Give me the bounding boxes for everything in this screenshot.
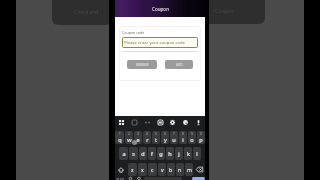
staticText: 6 bbox=[164, 132, 166, 136]
button[interactable]: a bbox=[119, 147, 128, 160]
button[interactable]: 1 bbox=[115, 131, 124, 144]
button[interactable]: z bbox=[128, 163, 137, 176]
button[interactable]: Previous screenshot bbox=[16, 0, 109, 180]
staticText: 3 bbox=[137, 132, 139, 136]
staticText: Please enter your coupon code bbox=[124, 40, 185, 46]
button[interactable]: k bbox=[184, 147, 192, 160]
staticText: m bbox=[187, 166, 192, 173]
staticText: g bbox=[159, 150, 163, 157]
button[interactable]: 8 bbox=[179, 131, 187, 144]
button[interactable]: d bbox=[139, 147, 147, 160]
staticText: v bbox=[161, 166, 164, 173]
button[interactable]: Symbols bbox=[115, 177, 125, 180]
staticText: i bbox=[182, 136, 184, 143]
button[interactable]: 5 bbox=[152, 131, 160, 144]
staticText: f bbox=[151, 150, 153, 157]
button[interactable]: b bbox=[167, 163, 175, 176]
staticText: p bbox=[199, 136, 203, 143]
staticText: Coupon code bbox=[122, 30, 145, 35]
button[interactable]: 3 bbox=[134, 131, 142, 144]
staticText: o bbox=[190, 136, 194, 143]
button[interactable]: Settings bbox=[167, 117, 178, 128]
button[interactable]: Backspace bbox=[194, 163, 205, 176]
button[interactable]: Voice input bbox=[193, 117, 204, 128]
staticText: 0 bbox=[200, 132, 202, 136]
button[interactable]: Next screenshot bbox=[209, 0, 304, 180]
staticText: Check and bbox=[74, 9, 99, 16]
staticText: z bbox=[131, 166, 134, 173]
staticText: 2 bbox=[128, 132, 130, 136]
staticText: w bbox=[127, 136, 132, 143]
button[interactable]: j bbox=[175, 147, 183, 160]
staticText: q bbox=[118, 136, 122, 143]
button[interactable]: n bbox=[176, 163, 184, 176]
staticText: b bbox=[169, 166, 173, 173]
button[interactable]: l bbox=[193, 147, 201, 160]
staticText: k bbox=[187, 150, 190, 157]
button[interactable]: s bbox=[129, 147, 138, 160]
button[interactable]: 0 bbox=[197, 131, 205, 144]
button[interactable]: f bbox=[148, 147, 156, 160]
staticText: l bbox=[196, 150, 198, 157]
staticText: s bbox=[132, 150, 135, 157]
button[interactable]: REMOVE bbox=[127, 60, 157, 69]
button[interactable]: 2 bbox=[125, 131, 133, 144]
button[interactable]: c bbox=[148, 163, 157, 176]
button[interactable]: m bbox=[185, 163, 193, 176]
button[interactable]: Please enter your coupon code bbox=[122, 37, 198, 48]
button[interactable]: ADD bbox=[165, 60, 193, 69]
button[interactable]: Clipboard bbox=[155, 117, 166, 128]
staticText: ?123 bbox=[116, 177, 124, 180]
button[interactable]: Enter bbox=[192, 177, 205, 180]
button[interactable]: v bbox=[158, 163, 166, 176]
staticText: a bbox=[122, 150, 126, 157]
staticText: d bbox=[141, 150, 145, 157]
button[interactable]: h bbox=[166, 147, 174, 160]
button[interactable]: Comma bbox=[135, 177, 143, 180]
button[interactable]: Translate bbox=[142, 117, 153, 128]
button[interactable]: 7 bbox=[170, 131, 178, 144]
staticText: e bbox=[136, 136, 140, 143]
staticText: Coupon bbox=[215, 8, 234, 15]
staticText: u bbox=[172, 136, 176, 143]
button[interactable]: 4 bbox=[143, 131, 151, 144]
button[interactable]: 9 bbox=[188, 131, 196, 144]
staticText: 4 bbox=[146, 132, 148, 136]
staticText: j bbox=[178, 150, 180, 157]
staticText: n bbox=[178, 166, 182, 173]
staticText: h bbox=[168, 150, 172, 157]
button[interactable]: g bbox=[157, 147, 165, 160]
staticText: 5 bbox=[155, 132, 157, 136]
button[interactable]: Apps bbox=[116, 117, 127, 128]
staticText: c bbox=[151, 166, 154, 173]
staticText: ADD bbox=[176, 63, 183, 67]
button[interactable]: Shift bbox=[115, 163, 127, 176]
staticText: 8 bbox=[182, 132, 184, 136]
staticText: Coupon bbox=[152, 6, 169, 12]
staticText: y bbox=[164, 136, 167, 143]
staticText: x bbox=[141, 166, 144, 173]
staticText: 9 bbox=[191, 132, 193, 136]
staticText: REMOVE bbox=[136, 63, 149, 67]
staticText: t bbox=[155, 136, 157, 143]
button[interactable]: 6 bbox=[161, 131, 169, 144]
button[interactable]: GIF bbox=[129, 117, 140, 128]
staticText: 7 bbox=[173, 132, 175, 136]
button[interactable]: x bbox=[138, 163, 147, 176]
button[interactable]: Themes bbox=[180, 117, 191, 128]
button[interactable]: Emoji bbox=[126, 177, 134, 180]
staticText: r bbox=[146, 136, 149, 143]
staticText: 1 bbox=[119, 132, 121, 136]
